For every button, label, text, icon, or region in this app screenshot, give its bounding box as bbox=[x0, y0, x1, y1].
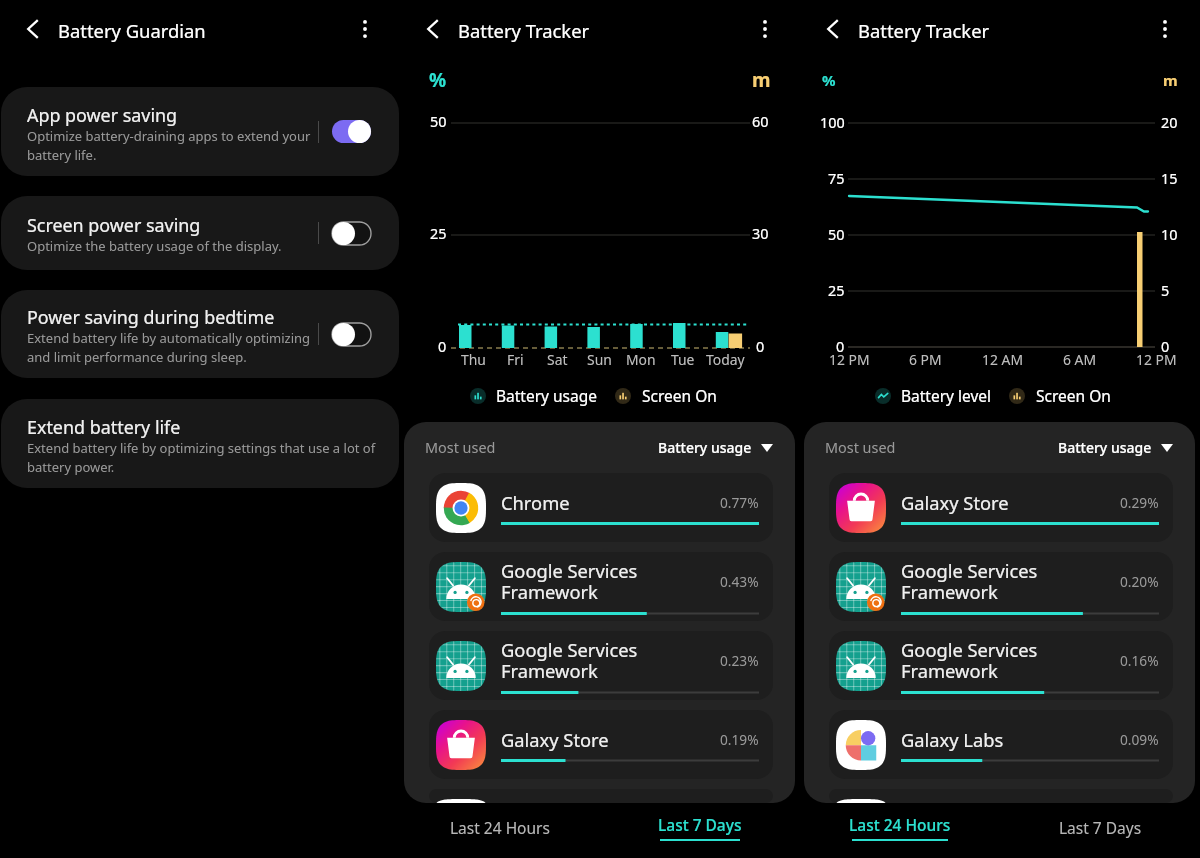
staticText: Galaxy Labs bbox=[901, 727, 1114, 752]
staticText: Galaxy Store bbox=[901, 490, 1114, 515]
staticText: Today bbox=[706, 350, 745, 369]
button[interactable]: Battery usage bbox=[1058, 434, 1173, 461]
staticText: 0.09% bbox=[1120, 730, 1159, 749]
button[interactable]: Screen On bbox=[1009, 385, 1111, 406]
staticText: Extend battery life bbox=[27, 415, 181, 439]
staticText: Google Services Framework bbox=[501, 637, 714, 684]
button[interactable]: Last 24 Hours bbox=[400, 803, 600, 858]
staticText: Last 24 Hours bbox=[849, 814, 951, 835]
staticText: 25 bbox=[828, 281, 845, 301]
staticText: Galaxy Store bbox=[501, 727, 714, 752]
staticText: 50 bbox=[828, 225, 845, 245]
staticText: Battery Tracker bbox=[458, 18, 590, 43]
staticText: Google Services Framework bbox=[501, 558, 714, 605]
staticText: Most used bbox=[425, 438, 496, 458]
button[interactable]: Last 24 Hours bbox=[800, 803, 1000, 858]
staticText: Power saving during bedtime bbox=[27, 305, 275, 329]
staticText: 60 bbox=[752, 112, 769, 132]
button[interactable] bbox=[429, 789, 773, 803]
staticText: 75 bbox=[828, 169, 845, 189]
staticText: m bbox=[752, 67, 771, 93]
button[interactable]: Switch off bbox=[332, 222, 371, 245]
staticText: Extend battery life by automatically opt… bbox=[27, 329, 311, 365]
staticText: Screen power saving bbox=[27, 213, 201, 237]
button[interactable]: Last 7 Days bbox=[1000, 803, 1200, 858]
button[interactable]: More options bbox=[348, 12, 382, 46]
staticText: Sat bbox=[547, 350, 568, 369]
staticText: 0.20% bbox=[1120, 572, 1159, 591]
staticText: Most used bbox=[825, 438, 896, 458]
staticText: Battery usage bbox=[1058, 438, 1152, 457]
button[interactable]: Switch off bbox=[332, 323, 371, 346]
button[interactable]: Last 7 Days bbox=[600, 803, 800, 858]
button[interactable]: More options bbox=[748, 12, 782, 46]
button[interactable]: App power saving bbox=[1, 87, 399, 176]
button[interactable]: Screen power saving bbox=[1, 196, 399, 270]
staticText: App power saving bbox=[27, 103, 178, 127]
button[interactable]: Google Services Framework bbox=[429, 631, 773, 700]
staticText: Battery Tracker bbox=[858, 18, 990, 43]
button[interactable]: Google Services Framework bbox=[829, 552, 1173, 621]
button[interactable]: Battery usage bbox=[658, 434, 773, 461]
button[interactable]: Switch on bbox=[332, 120, 371, 143]
button[interactable]: Navigate up bbox=[14, 10, 52, 48]
staticText: 0.77% bbox=[720, 493, 759, 512]
button[interactable] bbox=[829, 789, 1173, 803]
staticText: Chrome bbox=[501, 490, 714, 515]
staticText: 0 bbox=[756, 337, 765, 357]
button[interactable]: Navigate up bbox=[414, 10, 452, 48]
staticText: 0 bbox=[1161, 337, 1170, 357]
staticText: Battery usage bbox=[496, 385, 598, 406]
staticText: Battery usage bbox=[658, 438, 752, 457]
staticText: Optimize the battery usage of the displa… bbox=[27, 237, 282, 255]
staticText: 0 bbox=[438, 337, 447, 357]
staticText: Last 7 Days bbox=[1059, 817, 1142, 838]
button[interactable]: Galaxy Labs bbox=[829, 710, 1173, 779]
button[interactable]: Chrome bbox=[429, 473, 773, 542]
button[interactable]: Navigate up bbox=[814, 10, 852, 48]
staticText: 6 AM bbox=[1063, 350, 1097, 369]
staticText: 6 PM bbox=[909, 350, 942, 369]
staticText: 0 bbox=[836, 337, 845, 357]
staticText: % bbox=[822, 70, 836, 90]
staticText: 12 AM bbox=[982, 350, 1023, 369]
staticText: 0.43% bbox=[720, 572, 759, 591]
staticText: Tue bbox=[671, 350, 695, 369]
staticText: Google Services Framework bbox=[901, 558, 1114, 605]
button[interactable]: Galaxy Store bbox=[429, 710, 773, 779]
staticText: 20 bbox=[1161, 113, 1178, 133]
button[interactable]: Battery level bbox=[875, 385, 992, 406]
staticText: Last 7 Days bbox=[658, 814, 742, 835]
staticText: 12 PM bbox=[1136, 350, 1177, 369]
button[interactable]: Google Services Framework bbox=[429, 552, 773, 621]
staticText: Battery level bbox=[901, 385, 992, 406]
staticText: 12 PM bbox=[829, 350, 870, 369]
staticText: Optimize battery-draining apps to extend… bbox=[27, 127, 311, 163]
button[interactable]: Power saving during bedtime bbox=[1, 290, 399, 378]
staticText: 0.16% bbox=[1120, 651, 1159, 670]
staticText: 50 bbox=[430, 112, 447, 132]
staticText: Extend battery life by optimizing settin… bbox=[27, 439, 376, 475]
button[interactable]: Galaxy Store bbox=[829, 473, 1173, 542]
staticText: 25 bbox=[430, 224, 447, 244]
staticText: Fri bbox=[507, 350, 524, 369]
staticText: Battery Guardian bbox=[58, 18, 206, 43]
staticText: 5 bbox=[1161, 281, 1170, 301]
button[interactable]: Google Services Framework bbox=[829, 631, 1173, 700]
button[interactable]: Screen On bbox=[615, 385, 717, 406]
staticText: Sun bbox=[587, 350, 612, 369]
staticText: Last 24 Hours bbox=[450, 817, 550, 838]
button[interactable]: More options bbox=[1148, 12, 1182, 46]
staticText: m bbox=[1163, 70, 1178, 90]
staticText: Screen On bbox=[1036, 385, 1111, 406]
button[interactable]: Battery usage bbox=[470, 385, 598, 406]
staticText: 15 bbox=[1161, 169, 1178, 189]
staticText: Mon bbox=[626, 350, 656, 369]
staticText: 10 bbox=[1161, 225, 1178, 245]
staticText: Google Services Framework bbox=[901, 637, 1114, 684]
staticText: 0.29% bbox=[1120, 493, 1159, 512]
staticText: 100 bbox=[820, 113, 845, 133]
staticText: 30 bbox=[752, 224, 769, 244]
button[interactable]: Extend battery life bbox=[1, 399, 399, 488]
staticText: 0.19% bbox=[720, 730, 759, 749]
